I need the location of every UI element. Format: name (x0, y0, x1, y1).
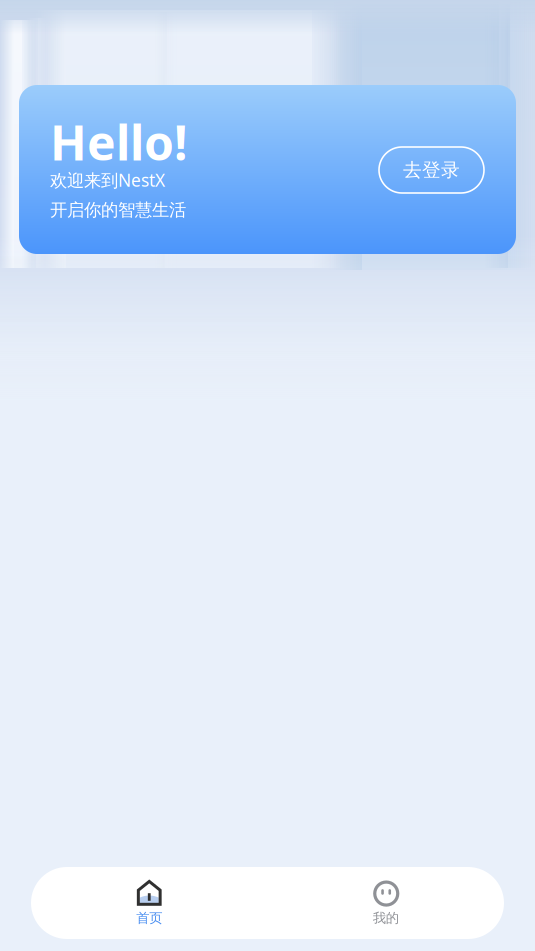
button[interactable]: 我的 (267, 880, 504, 926)
staticText: 开启你的智慧生活 (50, 199, 186, 221)
staticText: 我的 (373, 910, 399, 926)
staticText: Hello! (50, 110, 188, 174)
button[interactable]: 去登录 (379, 147, 484, 193)
button[interactable]: 首页 (31, 880, 267, 926)
staticText: 首页 (136, 910, 162, 926)
staticText: 欢迎来到NestX (50, 168, 165, 191)
staticText: 去登录 (403, 158, 460, 181)
